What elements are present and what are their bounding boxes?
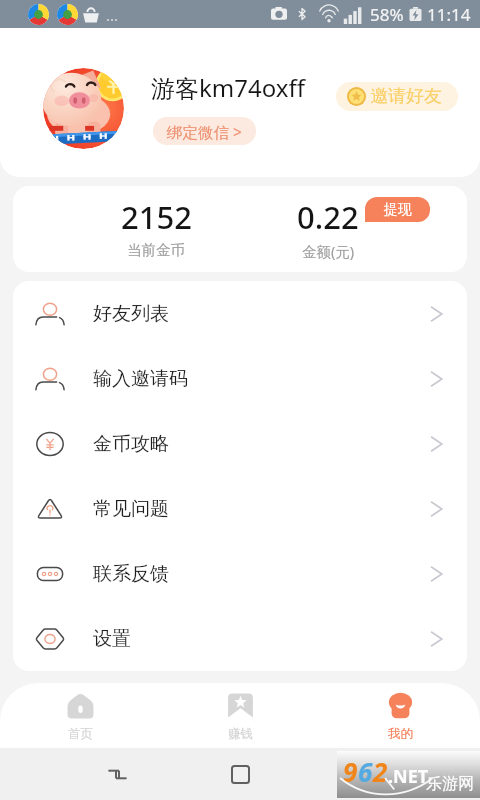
staticText: 9 [343, 754, 358, 789]
staticText: 58% [370, 3, 404, 26]
staticText: 输入邀请码 [93, 367, 188, 391]
button[interactable]: 金币攻略 [13, 411, 467, 476]
button[interactable]: 输入邀请码 [13, 346, 467, 411]
button[interactable]: 常见问题 [13, 476, 467, 541]
staticText: 首页 [68, 726, 93, 742]
staticText: 赚钱 [228, 726, 253, 742]
button[interactable]: 邀请好友 [336, 82, 458, 111]
button[interactable]: 提现 [365, 197, 430, 222]
staticText: 设置 [93, 627, 131, 651]
button[interactable]: 首页 [0, 683, 160, 748]
staticText: 金币攻略 [93, 432, 169, 456]
staticText: 2152 [121, 196, 192, 238]
staticText: 常见问题 [93, 497, 169, 521]
staticText: 提现 [384, 201, 412, 219]
staticText: .NET [388, 764, 429, 789]
other: Recents [108, 765, 127, 784]
button[interactable]: 好友列表 [13, 281, 467, 346]
staticText: 绑定微信 > [167, 121, 242, 142]
button[interactable]: 绑定微信 > [153, 117, 256, 145]
staticText: 我的 [388, 726, 413, 742]
button[interactable]: 我的 [320, 683, 480, 748]
staticText: 乐游网 [426, 774, 474, 794]
staticText: 0.22 [297, 196, 359, 238]
button[interactable]: 设置 [13, 606, 467, 671]
button[interactable]: Profile avatar [43, 68, 124, 149]
staticText: 11:14 [427, 3, 471, 26]
button[interactable]: 赚钱 [160, 683, 320, 748]
staticText: 金额(元) [302, 241, 355, 261]
staticText: 2 [373, 754, 388, 789]
staticText: 联系反馈 [93, 562, 169, 586]
button[interactable]: 联系反馈 [13, 541, 467, 606]
staticText: 邀请好友 [370, 85, 442, 108]
staticText: 6 [358, 754, 373, 789]
staticText: ... [106, 5, 119, 25]
staticText: 好友列表 [93, 302, 169, 326]
other: Home [232, 766, 249, 783]
staticText: 游客km74oxff [151, 71, 305, 104]
staticText: 当前金币 [127, 241, 185, 259]
